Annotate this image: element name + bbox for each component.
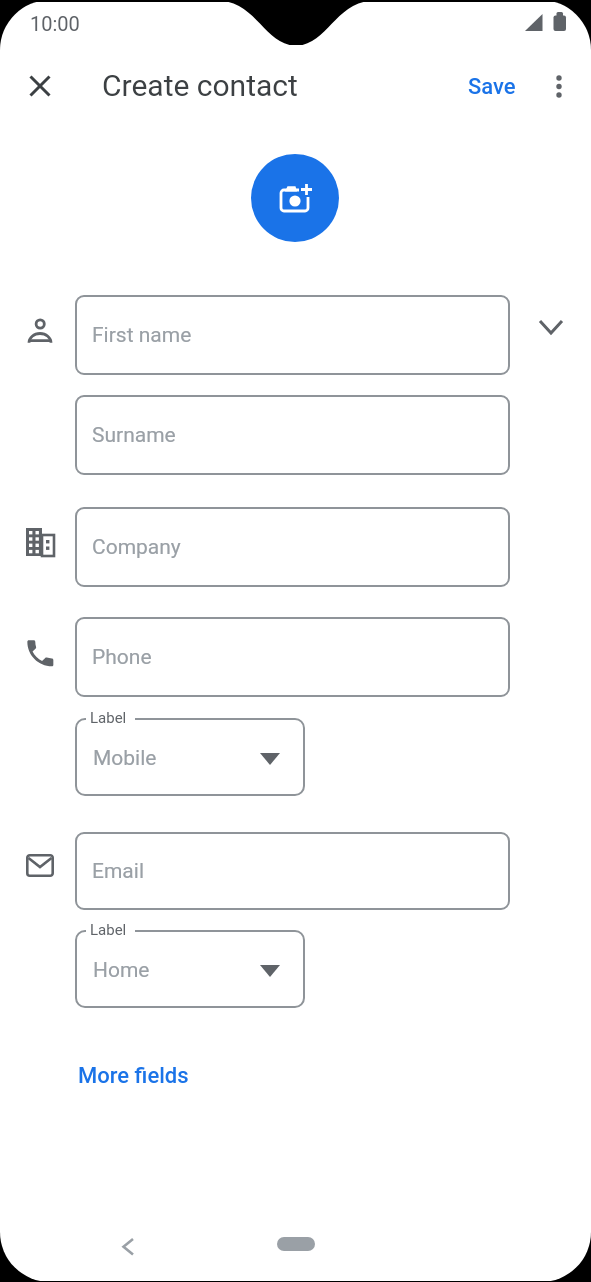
button[interactable]: Save xyxy=(452,64,532,110)
button[interactable] xyxy=(277,1237,315,1251)
staticText: 10:00 xyxy=(30,12,80,35)
staticText: Create contact xyxy=(102,68,298,103)
button[interactable] xyxy=(531,308,571,348)
button[interactable]: First name xyxy=(75,295,510,375)
button[interactable] xyxy=(251,154,339,242)
button[interactable]: Email xyxy=(75,832,510,910)
staticText: Label xyxy=(90,709,127,727)
button[interactable]: Surname xyxy=(75,395,510,475)
button[interactable]: Label xyxy=(75,930,305,1008)
button[interactable]: Company xyxy=(75,507,510,587)
staticText: Surname xyxy=(92,423,176,448)
staticText: Label xyxy=(90,921,127,939)
button[interactable]: Phone xyxy=(75,617,510,697)
button[interactable] xyxy=(20,66,60,106)
button[interactable]: More fields xyxy=(62,1052,204,1100)
staticText: Phone xyxy=(92,645,152,670)
staticText: Home xyxy=(93,958,150,983)
staticText: Company xyxy=(92,535,181,560)
button[interactable] xyxy=(103,1227,143,1267)
button[interactable]: Label xyxy=(75,718,305,796)
staticText: Email xyxy=(92,859,144,884)
staticText: Save xyxy=(468,74,516,100)
staticText: First name xyxy=(92,323,192,348)
staticText: More fields xyxy=(78,1063,189,1089)
staticText: Mobile xyxy=(93,746,157,771)
button[interactable] xyxy=(539,66,579,106)
